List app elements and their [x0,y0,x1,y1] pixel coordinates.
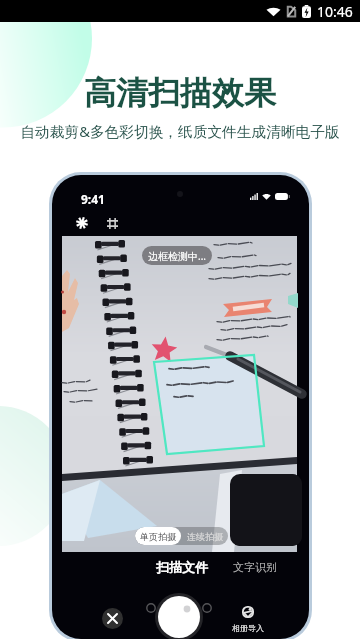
button[interactable]: 连续拍摄 [181,527,228,545]
button[interactable]: Flash [76,217,88,229]
staticText: 10:46 [317,2,353,21]
staticText: 连续拍摄 [187,531,223,542]
staticText: 文字识别 [233,560,277,574]
button[interactable]: 单页拍摄 [135,527,181,545]
staticText: 扫描文件 [156,559,208,575]
button[interactable]: 扫描文件 [152,556,212,578]
button[interactable]: Close [102,608,123,629]
staticText: 自动裁剪&多色彩切换，纸质文件生成清晰电子版 [0,121,360,141]
button[interactable]: 相册导入 [228,606,268,633]
staticText: 边框检测中... [148,249,207,263]
button[interactable]: Crop [107,218,118,229]
button[interactable]: 文字识别 [229,557,281,577]
staticText: 9:41 [81,191,105,207]
staticText: 高清扫描效果 [0,73,360,113]
staticText: 相册导入 [232,623,264,633]
staticText: 单页拍摄 [140,531,176,542]
